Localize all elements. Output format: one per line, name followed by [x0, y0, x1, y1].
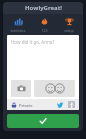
button[interactable]: Share on Twitter	[56, 100, 65, 109]
staticText: Private	[19, 103, 33, 108]
button[interactable]: HowlyGreat!	[3, 2, 83, 14]
staticText: How did it go, Anna?	[11, 39, 55, 45]
button[interactable]: Confirm	[7, 114, 79, 128]
button[interactable]: Share on Facebook	[67, 100, 76, 109]
button[interactable]: 123	[31, 16, 57, 34]
staticText: statistics	[10, 28, 26, 33]
staticText: setup	[64, 28, 74, 33]
staticText: 123	[41, 28, 48, 33]
button[interactable]: How did it go, Anna?	[7, 35, 79, 78]
button[interactable]: Private	[10, 101, 34, 109]
button[interactable]: statistics	[5, 16, 31, 34]
staticText: HowlyGreat!	[25, 4, 62, 12]
button[interactable]: Choose mood	[34, 80, 75, 97]
button[interactable]: setup	[57, 16, 81, 34]
button[interactable]: Add photo	[11, 80, 31, 97]
